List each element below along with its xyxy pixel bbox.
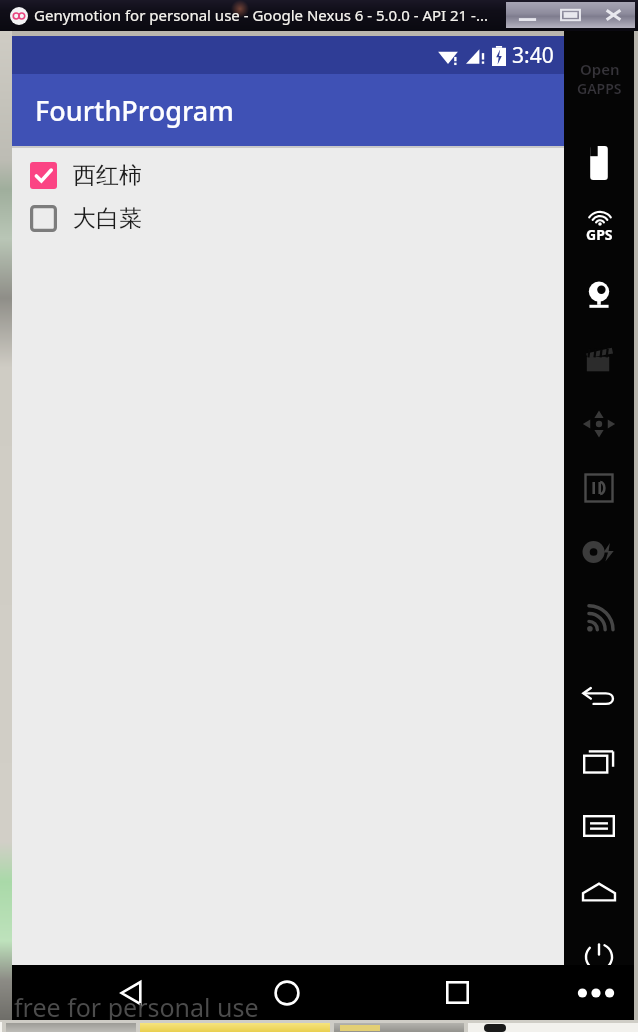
- button[interactable]: Menu: [564, 794, 634, 858]
- staticText: 3:40: [512, 41, 554, 70]
- button[interactable]: Battery: [564, 131, 634, 195]
- button[interactable]: Accelerometer: [564, 392, 634, 456]
- button[interactable]: Home: [564, 860, 634, 924]
- button[interactable]: Back: [564, 664, 634, 728]
- staticText: Genymotion for personal use - Google Nex…: [34, 5, 488, 25]
- button[interactable]: 西红柿: [12, 154, 564, 197]
- button[interactable]: More options: [568, 965, 624, 1020]
- staticText: Open: [580, 59, 620, 79]
- button[interactable]: GPS: [564, 195, 634, 259]
- button[interactable]: Close: [592, 2, 635, 28]
- button[interactable]: OpenGAPPS: [564, 46, 634, 110]
- button[interactable]: 大白菜: [12, 197, 564, 240]
- staticText: 大白菜: [73, 204, 142, 233]
- button[interactable]: Recents: [427, 965, 487, 1020]
- button[interactable]: Maximize: [549, 2, 592, 28]
- button[interactable]: Disk IO: [564, 520, 634, 584]
- button[interactable]: Back: [102, 965, 162, 1020]
- button[interactable]: Recents: [564, 729, 634, 793]
- button[interactable]: Camera: [564, 262, 634, 326]
- staticText: 西红柿: [73, 161, 142, 190]
- button[interactable]: Network: [564, 586, 634, 650]
- button[interactable]: Power: [564, 925, 634, 989]
- staticText: FourthProgram: [35, 92, 234, 129]
- button[interactable]: Screen recorder: [564, 327, 634, 391]
- staticText: free for personal use: [14, 990, 259, 1024]
- button[interactable]: Home: [257, 965, 317, 1020]
- staticText: GAPPS: [577, 79, 622, 98]
- staticText: GPS: [586, 225, 613, 244]
- button[interactable]: Minimize: [506, 2, 549, 28]
- other: Genymotion icon: [10, 7, 28, 25]
- button[interactable]: Identifiers: [564, 456, 634, 520]
